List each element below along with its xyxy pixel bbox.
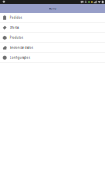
staticText: Pedidos — [10, 16, 22, 19]
staticText: Produtos — [10, 36, 23, 39]
staticText: Sincronizar dados — [10, 46, 33, 49]
button[interactable]: Produtos — [0, 33, 105, 43]
staticText: Menu — [48, 7, 56, 10]
button[interactable]: Configurações — [0, 53, 105, 63]
staticText: Configurações — [10, 56, 30, 59]
button[interactable]: Pedidos — [0, 13, 105, 23]
button[interactable]: Sincronizar dados — [0, 43, 105, 53]
staticText: Ofertas — [10, 26, 19, 29]
button[interactable]: Ofertas — [0, 23, 105, 33]
